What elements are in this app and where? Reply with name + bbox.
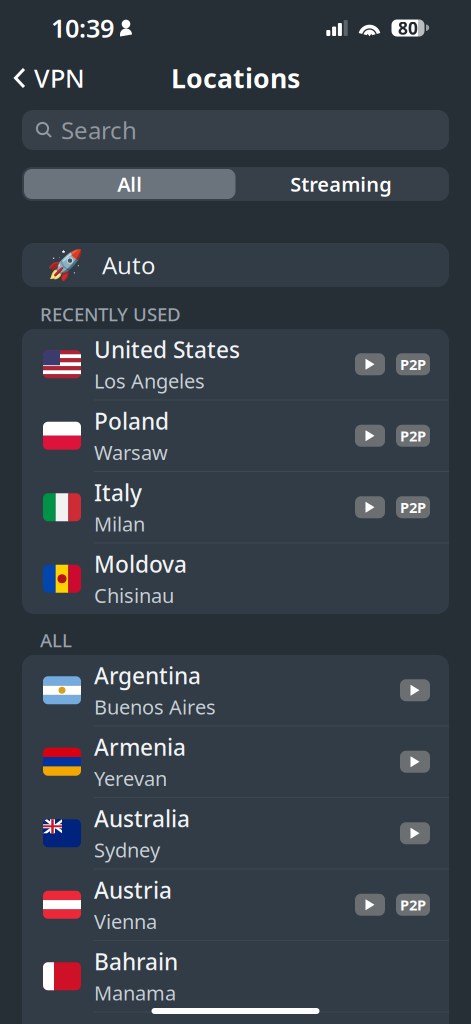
- staticText: Moldova: [94, 549, 187, 579]
- button[interactable]: Armenia: [22, 726, 449, 797]
- staticText: All: [117, 171, 142, 197]
- button[interactable]: 🚀: [22, 243, 449, 287]
- staticText: Chisinau: [94, 582, 174, 609]
- staticText: Buenos Aires: [94, 693, 216, 720]
- staticText: Vienna: [94, 908, 157, 935]
- staticText: ALL: [40, 628, 72, 652]
- staticText: P2P: [400, 895, 426, 914]
- button[interactable]: Belgium: [22, 1012, 449, 1024]
- staticText: 80: [398, 16, 418, 39]
- button[interactable]: Austria: [22, 869, 449, 940]
- staticText: P2P: [400, 426, 426, 445]
- button[interactable]: Italy: [22, 472, 449, 542]
- button[interactable]: Bahrain: [22, 941, 449, 1011]
- staticText: Locations: [171, 60, 300, 96]
- staticText: Australia: [94, 803, 190, 833]
- staticText: P2P: [400, 497, 426, 517]
- staticText: Argentina: [94, 660, 201, 690]
- button[interactable]: Search: [22, 110, 449, 150]
- staticText: Poland: [94, 406, 169, 436]
- staticText: Search: [61, 114, 137, 146]
- staticText: Warsaw: [94, 439, 168, 466]
- staticText: Armenia: [94, 732, 186, 762]
- staticText: Streaming: [290, 171, 392, 197]
- staticText: Yerevan: [94, 765, 167, 792]
- button[interactable]: United States: [22, 329, 449, 399]
- button[interactable]: Poland: [22, 400, 449, 471]
- staticText: P2P: [400, 354, 426, 374]
- button[interactable]: Moldova: [22, 543, 449, 614]
- staticText: 10:39: [51, 11, 114, 45]
- staticText: Auto: [102, 249, 156, 281]
- staticText: 🚀: [47, 248, 84, 282]
- staticText: Bahrain: [94, 946, 178, 976]
- button[interactable]: Streaming: [235, 169, 447, 199]
- button[interactable]: VPN: [0, 56, 99, 100]
- staticText: Los Angeles: [94, 367, 205, 394]
- staticText: Austria: [94, 875, 172, 905]
- staticText: Italy: [94, 477, 142, 507]
- staticText: RECENTLY USED: [40, 302, 181, 326]
- staticText: United States: [94, 334, 240, 364]
- staticText: Manama: [94, 979, 176, 1006]
- button[interactable]: Argentina: [22, 655, 449, 725]
- staticText: Sydney: [94, 836, 160, 863]
- staticText: VPN: [34, 61, 85, 95]
- staticText: Milan: [94, 510, 145, 537]
- button[interactable]: Australia: [22, 798, 449, 868]
- button[interactable]: All: [24, 169, 235, 199]
